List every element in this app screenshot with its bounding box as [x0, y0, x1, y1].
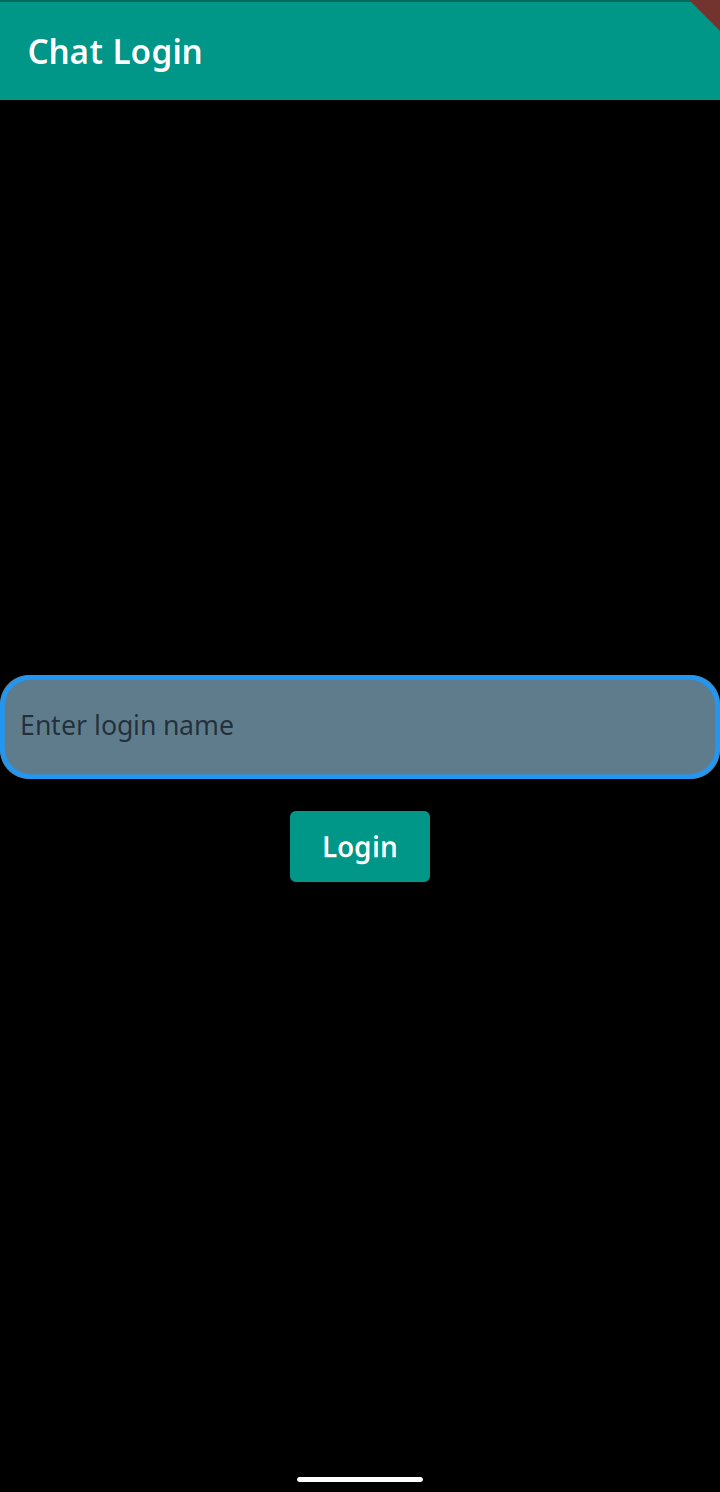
button[interactable]: Login: [290, 811, 430, 882]
staticText: Login: [322, 828, 398, 865]
button[interactable]: Enter login name: [0, 675, 720, 779]
staticText: Chat Login: [28, 29, 203, 73]
staticText: Enter login name: [20, 707, 234, 742]
